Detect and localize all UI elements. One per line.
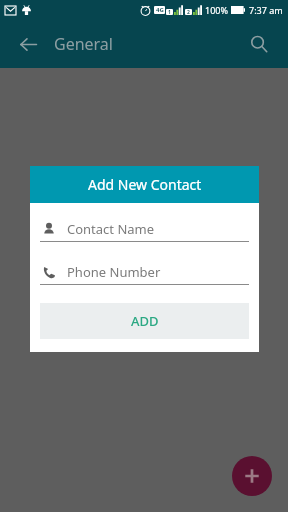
staticText: 7:37 am	[249, 4, 283, 16]
staticText: Phone Number	[67, 263, 161, 281]
button[interactable]: Back	[14, 30, 42, 58]
staticText: ADD	[131, 312, 159, 330]
button[interactable]: Add contact	[232, 456, 272, 496]
staticText: Contact Name	[67, 220, 155, 238]
staticText: 4G	[156, 6, 164, 14]
staticText: 1	[168, 9, 171, 15]
staticText: Add New Contact	[88, 175, 202, 194]
staticText: General	[54, 33, 113, 55]
button[interactable]: ADD	[40, 303, 249, 339]
staticText: 2	[187, 9, 190, 15]
staticText: 100%	[205, 4, 228, 16]
button[interactable]: Search	[244, 29, 274, 59]
